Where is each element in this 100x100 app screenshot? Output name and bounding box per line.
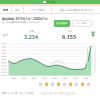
staticText: 過去1ヶ月の推移を表示中です xyxy=(60,8,93,11)
button[interactable]: 過去1ヶ月の推移を表示中です xyxy=(52,6,100,13)
button[interactable]: Badge xyxy=(62,82,67,87)
staticText: 獲得バッジ一覧（タップで詳細） xyxy=(2,92,36,95)
button[interactable]: MyApp xyxy=(0,0,100,4)
button[interactable]: グラフ表示 xyxy=(54,20,70,27)
staticText: グラフ表示 xyxy=(56,22,68,25)
button[interactable]: Badge xyxy=(50,82,55,87)
button[interactable]: 表示 xyxy=(12,6,23,13)
button[interactable]: グラフ種別 xyxy=(24,6,51,13)
button[interactable]: Badge xyxy=(38,82,43,87)
staticText: 3,234 xyxy=(24,33,39,40)
button[interactable]: Badge xyxy=(86,82,91,87)
staticText: リスト表示 xyxy=(76,22,88,25)
button[interactable]: Badge xyxy=(44,82,49,87)
staticText: 期間 xyxy=(3,8,9,11)
staticText: データの更新は毎日深夜に行われます xyxy=(2,21,40,24)
staticText: 合計 xyxy=(3,33,9,36)
button[interactable]: Badge xyxy=(80,82,85,87)
staticText: 平均 xyxy=(68,30,72,33)
staticText: グラフ種別 xyxy=(31,8,45,11)
button[interactable]: Badge xyxy=(68,82,73,87)
button[interactable]: Badge xyxy=(74,82,79,87)
staticText: 最長期間: 2019年1月〜2020年1月 xyxy=(2,17,48,21)
staticText: 表示 xyxy=(15,8,21,11)
staticText: このページについて詳しくはこちら xyxy=(40,92,76,95)
button[interactable]: Download xyxy=(90,31,96,37)
button[interactable]: 期間 xyxy=(0,6,11,13)
staticText: MyApp xyxy=(47,0,57,4)
button[interactable]: Badge xyxy=(56,82,61,87)
staticText: 歩数 xyxy=(30,30,34,33)
button[interactable]: リスト表示 xyxy=(72,20,92,27)
staticText: 6,155 xyxy=(62,33,77,40)
